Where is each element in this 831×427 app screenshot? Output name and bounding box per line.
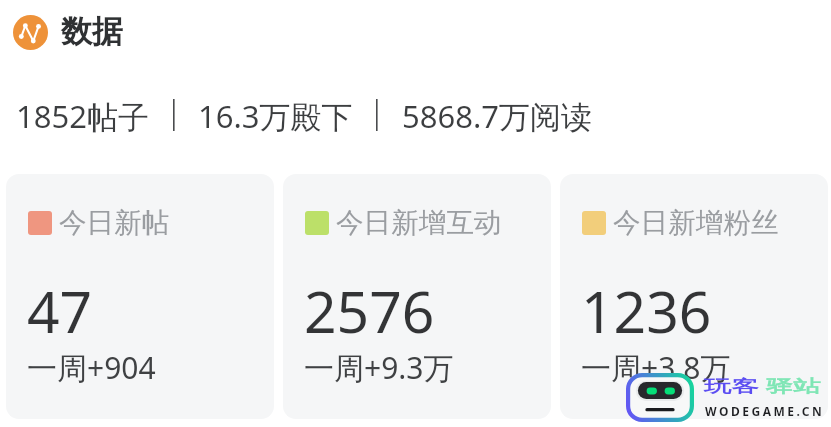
staticText: 一周+904 xyxy=(27,347,156,388)
staticText: 今日新增互动 xyxy=(336,205,502,240)
button[interactable]: 今日新增互动 xyxy=(283,174,551,419)
staticText: 今日新帖 xyxy=(59,205,170,240)
staticText: 一周+9.3万 xyxy=(304,347,454,388)
button[interactable]: Data app icon xyxy=(13,8,123,54)
staticText: 今日新增粉丝 xyxy=(613,205,779,240)
staticText: 一周+3.8万 xyxy=(581,347,731,388)
staticText: 1236 xyxy=(581,272,712,350)
staticText: 47 xyxy=(27,272,93,350)
button[interactable]: 今日新增粉丝 xyxy=(560,174,828,419)
staticText: 数据 xyxy=(61,12,123,51)
staticText: WODEGAME.CN xyxy=(705,403,825,419)
staticText: 16.3万殿下 xyxy=(198,95,353,137)
button[interactable]: 16.3万殿下 xyxy=(196,92,351,134)
other: WODEGAME.CN watermark xyxy=(626,373,694,422)
staticText: 2576 xyxy=(304,272,435,350)
button[interactable]: 今日新帖 xyxy=(6,174,274,419)
staticText: 驿站 xyxy=(766,376,821,398)
staticText: 5868.7万阅读 xyxy=(402,95,592,137)
button[interactable]: 1852帖子 xyxy=(14,92,147,134)
button[interactable]: 5868.7万阅读 xyxy=(400,92,590,134)
staticText: 1852帖子 xyxy=(16,95,149,137)
other: Data app icon xyxy=(13,15,48,50)
staticText: 玩客 xyxy=(704,376,759,398)
